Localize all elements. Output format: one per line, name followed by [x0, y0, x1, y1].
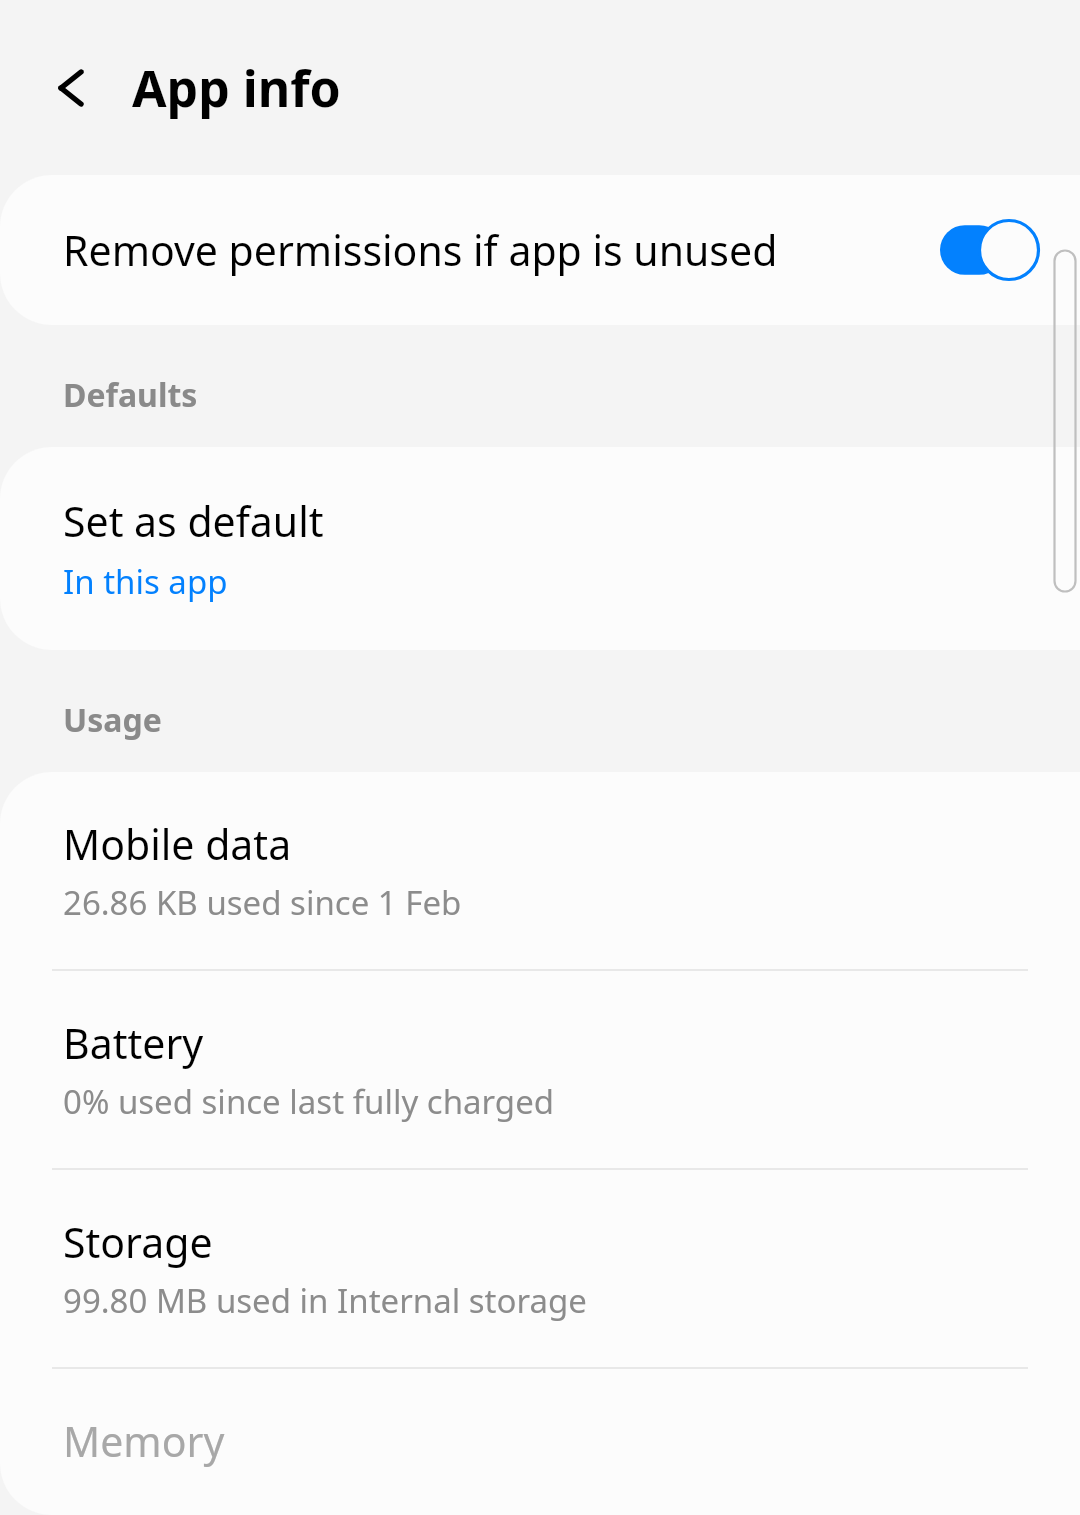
staticText: Memory	[63, 1413, 225, 1469]
staticText: Battery	[63, 1015, 204, 1071]
button[interactable]: Remove permissions if app is unused	[0, 175, 1080, 325]
button[interactable]: Memory	[0, 1369, 1080, 1515]
button[interactable]: Set as default	[0, 447, 1080, 650]
button[interactable]: Storage	[0, 1170, 1080, 1367]
staticText: Storage	[63, 1214, 213, 1270]
staticText: Mobile data	[63, 816, 292, 872]
staticText: 26.86 KB used since 1 Feb	[63, 880, 462, 925]
button[interactable]: Remove permissions if app is unused togg…	[940, 219, 1040, 281]
staticText: Defaults	[63, 373, 198, 417]
staticText: Usage	[63, 698, 162, 742]
staticText: 0% used since last fully charged	[63, 1079, 555, 1124]
button[interactable]: Back	[34, 49, 112, 127]
staticText: App info	[132, 54, 341, 122]
button[interactable]: Mobile data	[0, 772, 1080, 969]
staticText: Set as default	[63, 493, 324, 549]
staticText: Remove permissions if app is unused	[63, 222, 830, 278]
staticText: In this app	[63, 559, 228, 604]
staticText: 99.80 MB used in Internal storage	[63, 1278, 587, 1323]
button[interactable]: Battery	[0, 971, 1080, 1168]
